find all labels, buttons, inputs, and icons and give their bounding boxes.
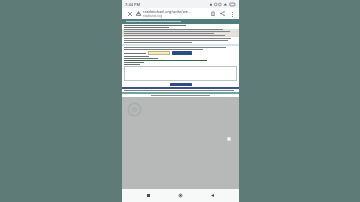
button[interactable]: Bookmark: [208, 9, 217, 18]
button[interactable]: [148, 51, 170, 55]
button[interactable]: [124, 66, 237, 81]
staticText: readwrite.org: [143, 14, 163, 18]
button[interactable]: Share: [218, 9, 227, 18]
button[interactable]: Close: [125, 9, 134, 18]
button[interactable]: Recording indicator: [128, 103, 141, 116]
button[interactable]: Floating control: [227, 137, 231, 141]
button[interactable]: [170, 83, 192, 86]
button[interactable]: More options: [228, 10, 236, 18]
button[interactable]: [172, 51, 192, 55]
staticText: readmichael.org/write/we…: [143, 9, 191, 14]
button[interactable]: Back: [207, 190, 218, 201]
staticText: 7:44 PM: [125, 2, 141, 7]
button[interactable]: Recent apps: [143, 190, 154, 201]
button[interactable]: Home: [175, 190, 186, 201]
button[interactable]: readmichael.org/write/we…: [143, 9, 207, 18]
